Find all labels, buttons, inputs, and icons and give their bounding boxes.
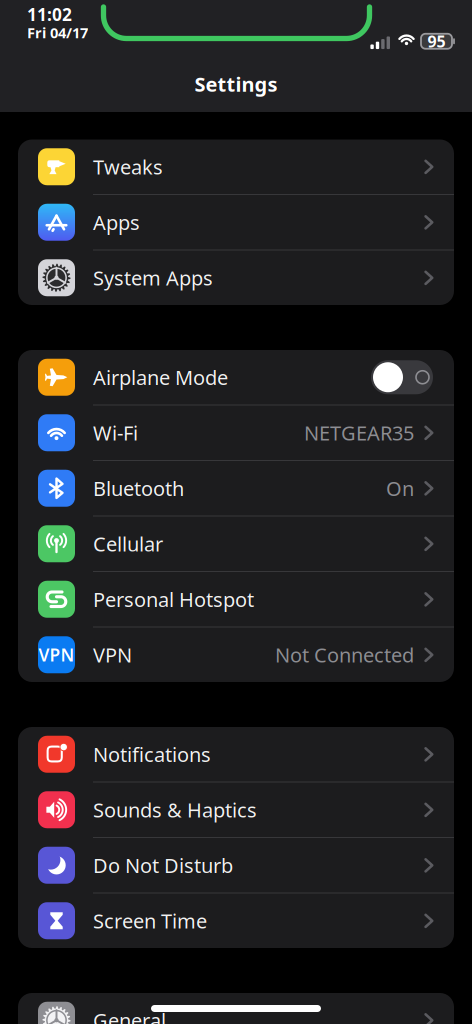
staticText: Personal Hotspot	[93, 586, 254, 613]
staticText: Notifications	[93, 741, 211, 768]
staticText: Airplane Mode	[93, 364, 228, 391]
staticText: 95	[427, 31, 445, 52]
button[interactable]: Apps	[18, 195, 454, 249]
staticText: Apps	[93, 209, 140, 236]
staticText: Cellular	[93, 530, 163, 557]
staticText: Not Connected	[275, 641, 414, 668]
staticText: 11:02	[27, 3, 72, 26]
button[interactable]: General	[18, 993, 454, 1024]
button[interactable]: Wi-Fi	[18, 405, 454, 460]
staticText: Wi-Fi	[93, 419, 138, 446]
staticText: Fri 04/17	[27, 23, 88, 42]
button[interactable]: Cellular	[18, 516, 454, 571]
staticText: Do Not Disturb	[93, 852, 233, 879]
staticText: Bluetooth	[93, 475, 184, 502]
button[interactable]: Airplane Mode	[18, 350, 454, 404]
button[interactable]: VPN	[18, 627, 454, 682]
staticText: Settings	[194, 71, 277, 97]
button[interactable]: Tweaks	[18, 139, 454, 194]
staticText: System Apps	[93, 264, 213, 291]
button[interactable]: Notifications	[18, 727, 454, 781]
button[interactable]: Bluetooth	[18, 461, 454, 515]
staticText: Tweaks	[93, 153, 163, 180]
staticText: VPN	[93, 641, 132, 668]
button[interactable]: Do Not Disturb	[18, 838, 454, 892]
button[interactable]: System Apps	[18, 250, 454, 305]
button[interactable]: Screen Time	[18, 893, 454, 948]
button[interactable]: Sounds & Haptics	[18, 782, 454, 837]
button[interactable]: Personal Hotspot	[18, 572, 454, 626]
staticText: Screen Time	[93, 907, 207, 934]
staticText: General	[93, 1007, 166, 1024]
staticText: Sounds & Haptics	[93, 796, 257, 823]
staticText: NETGEAR35	[304, 419, 414, 446]
staticText: VPN	[38, 643, 74, 666]
staticText: On	[386, 475, 414, 502]
